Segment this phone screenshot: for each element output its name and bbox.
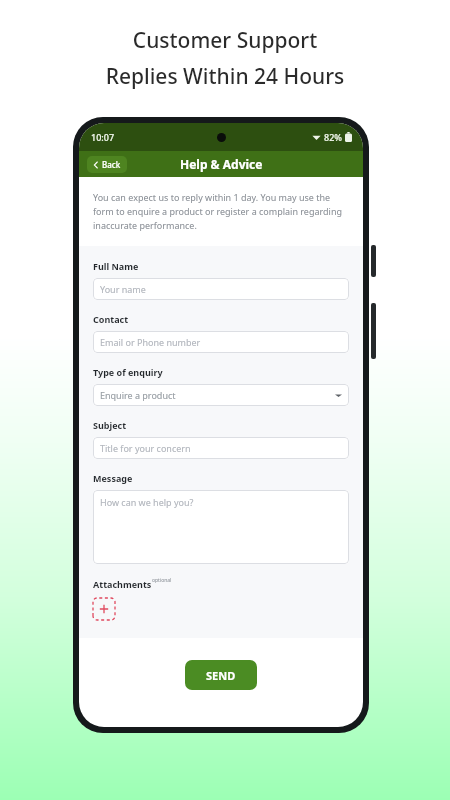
button[interactable]: Title for your concern: [93, 437, 349, 459]
staticText: Help & Advice: [180, 156, 263, 172]
staticText: Title for your concern: [100, 442, 191, 454]
staticText: Enquire a product: [100, 389, 176, 401]
button[interactable]: Your name: [93, 278, 349, 300]
staticText: How can we help you?: [100, 496, 194, 508]
staticText: Email or Phone number: [100, 336, 201, 348]
staticText: Contact: [93, 313, 129, 325]
staticText: SEND: [206, 668, 236, 683]
button[interactable]: How can we help you?: [93, 490, 349, 564]
staticText: optional: [152, 577, 172, 584]
button[interactable]: SEND: [185, 660, 257, 690]
staticText: Subject: [93, 419, 127, 431]
staticText: Replies Within 24 Hours: [0, 62, 450, 91]
button[interactable]: Enquire a product: [93, 384, 349, 406]
staticText: Full Name: [93, 260, 139, 272]
staticText: Customer Support: [0, 26, 450, 55]
staticText: Message: [93, 472, 133, 484]
staticText: 10:07: [91, 131, 115, 143]
button[interactable]: Email or Phone number: [93, 331, 349, 353]
button[interactable]: Add attachment: [93, 598, 115, 620]
staticText: Back: [102, 159, 121, 170]
button[interactable]: Back: [87, 156, 127, 173]
staticText: Attachments: [93, 578, 152, 590]
staticText: Your name: [100, 283, 146, 295]
staticText: 82%: [324, 131, 342, 143]
staticText: You can expect us to reply within 1 day.…: [93, 191, 349, 232]
staticText: Type of enquiry: [93, 366, 163, 378]
